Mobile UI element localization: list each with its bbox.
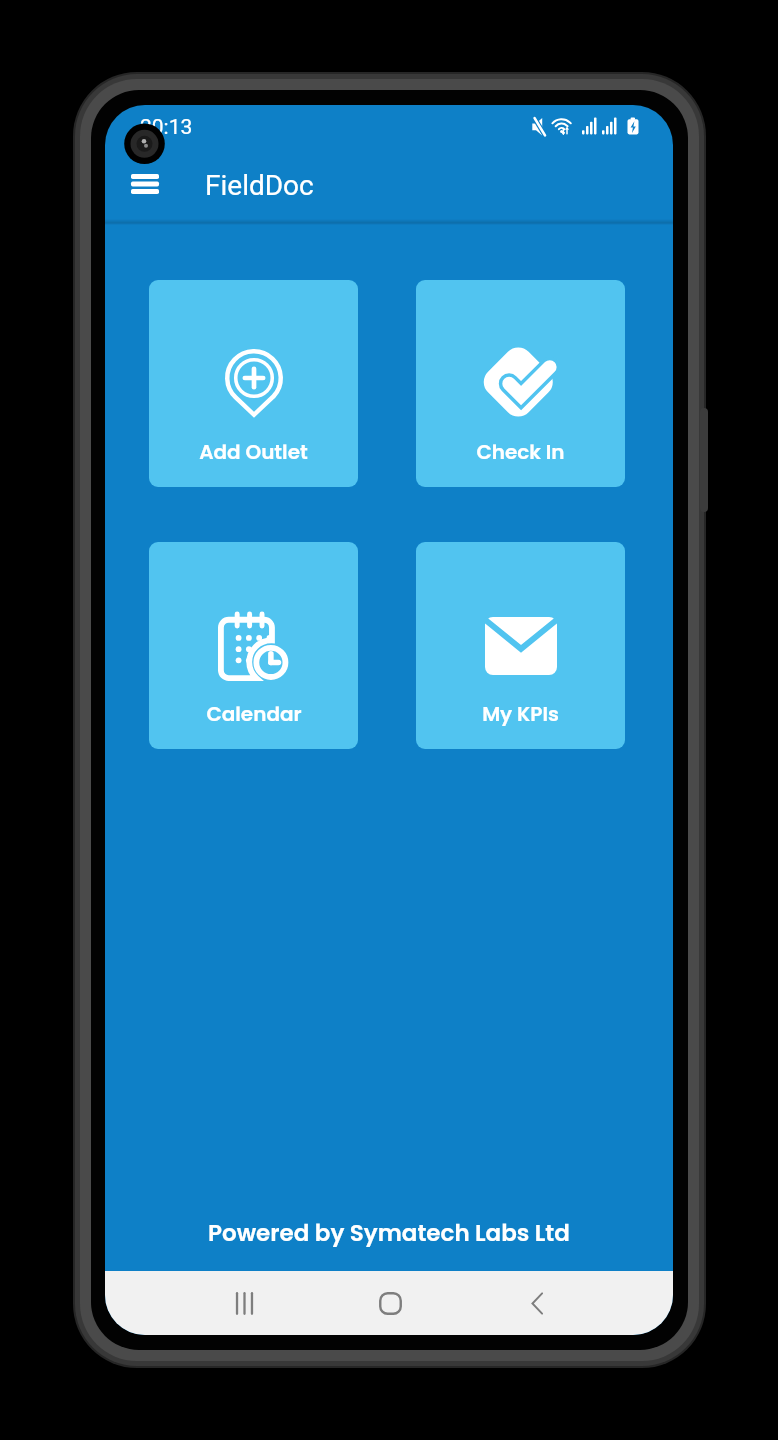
staticText: Powered by Symatech Labs Ltd (208, 1217, 570, 1249)
button[interactable]: My KPIs (416, 542, 625, 749)
staticText: 20:13 (140, 115, 193, 140)
button[interactable]: Calendar (149, 542, 358, 749)
staticText: My KPIs (482, 700, 559, 728)
button[interactable]: Open navigation drawer (117, 156, 172, 211)
button[interactable]: Add Outlet (149, 280, 358, 487)
button[interactable]: Back (501, 1271, 573, 1335)
staticText: FieldDoc (205, 169, 314, 202)
button[interactable]: Home (354, 1271, 426, 1335)
staticText: Check In (476, 438, 565, 466)
staticText: Add Outlet (199, 438, 308, 466)
button[interactable]: Check In (416, 280, 625, 487)
button[interactable]: Recent apps (208, 1271, 280, 1335)
staticText: Calendar (206, 700, 302, 728)
